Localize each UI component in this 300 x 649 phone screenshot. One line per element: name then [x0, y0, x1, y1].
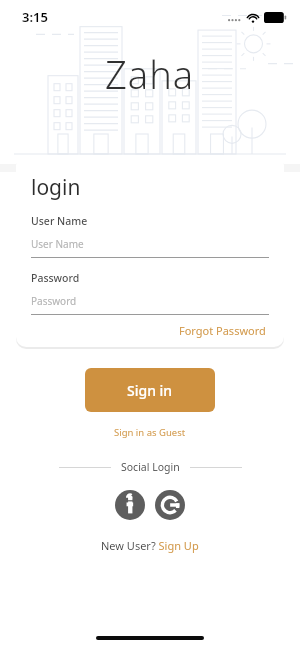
staticText: Password: [31, 294, 77, 308]
staticText: Sign in as Guest: [114, 426, 186, 439]
staticText: 3:15: [22, 8, 48, 26]
button[interactable]: Sign in as Guest: [108, 424, 192, 441]
staticText: Sign in: [127, 381, 173, 400]
staticText: Zaha: [105, 48, 195, 100]
staticText: User Name: [31, 237, 84, 251]
button[interactable]: Sign in with Google: [155, 490, 185, 520]
staticText: New User? Sign Up: [101, 538, 199, 553]
button[interactable]: Password: [31, 294, 269, 308]
button[interactable]: Sign in with Facebook: [115, 490, 145, 520]
staticText: Social Login: [121, 460, 180, 474]
button[interactable]: Forgot Password: [176, 321, 269, 340]
button[interactable]: User Name: [31, 237, 269, 251]
staticText: User Name: [31, 214, 88, 228]
staticText: Forgot Password: [179, 323, 266, 338]
staticText: Password: [31, 271, 80, 285]
staticText: login: [31, 173, 81, 202]
button[interactable]: New User? Sign Up: [95, 536, 205, 555]
button[interactable]: Sign in: [85, 368, 215, 412]
